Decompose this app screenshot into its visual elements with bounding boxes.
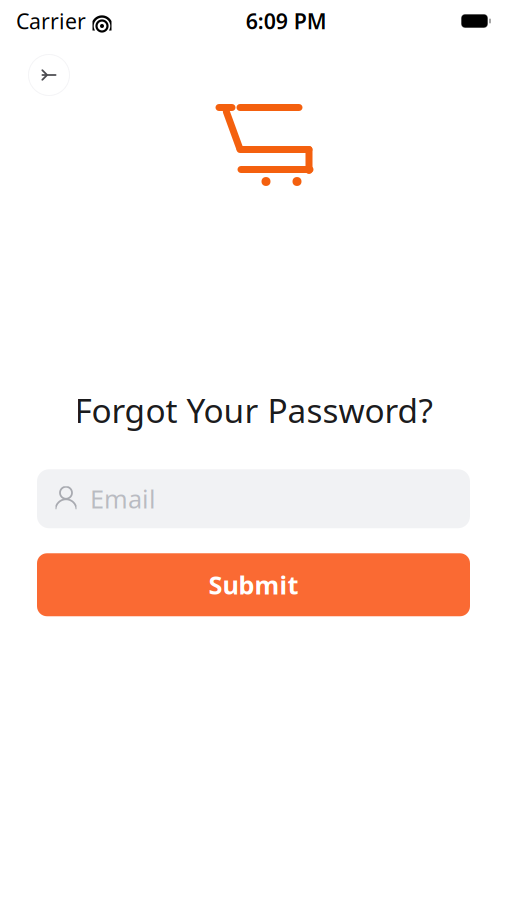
staticText: 6:09 PM (246, 7, 327, 35)
staticText: Email (90, 482, 156, 515)
staticText: Submit (208, 568, 298, 601)
staticText: Forgot Your Password? (74, 388, 432, 432)
button[interactable]: Submit (37, 553, 470, 616)
button[interactable]: Back (25, 51, 73, 99)
staticText: Carrier (16, 7, 86, 35)
